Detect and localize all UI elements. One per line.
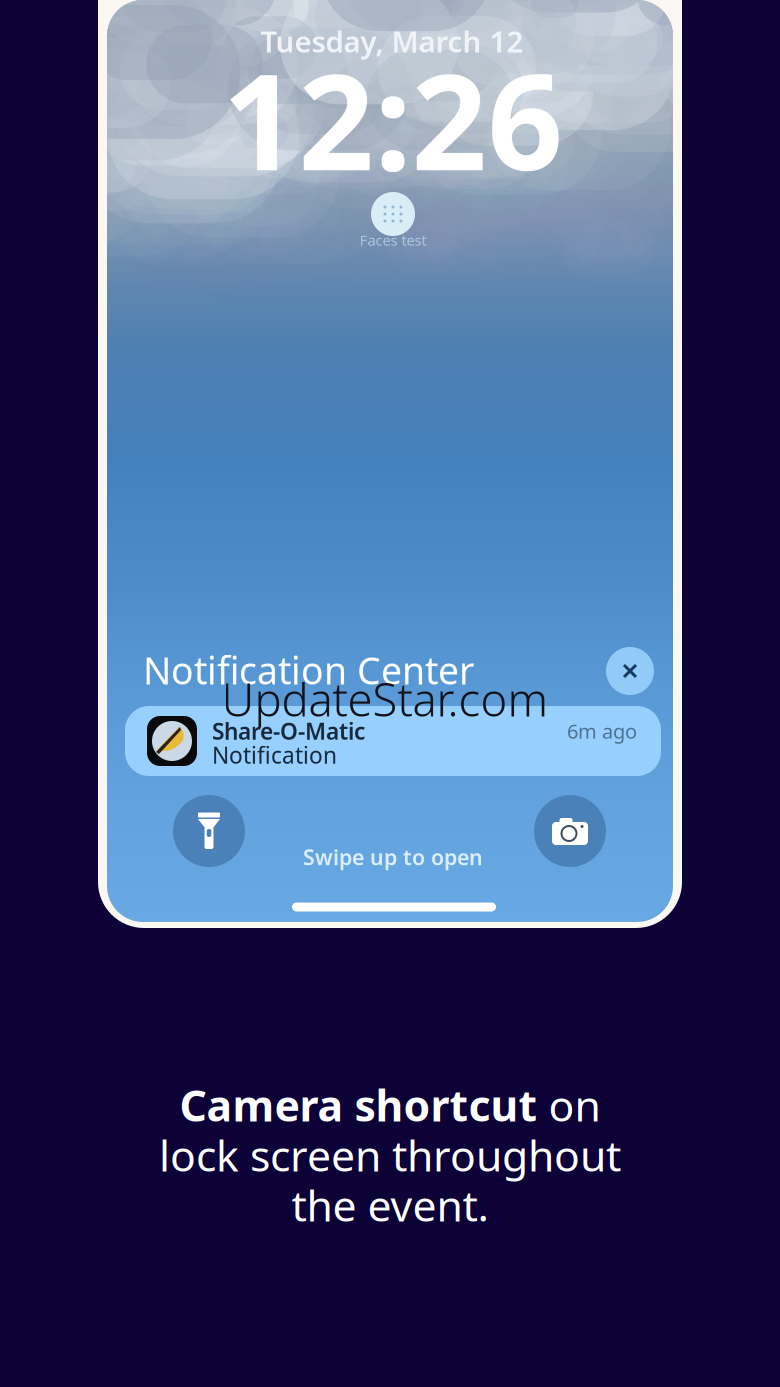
staticText: UpdateStar.com [221, 669, 548, 729]
staticText: lock screen throughout [159, 1127, 621, 1183]
staticText: 6m ago [567, 718, 637, 744]
button[interactable]: Camera [534, 795, 606, 867]
staticText: 12:26 [222, 31, 563, 207]
button[interactable]: Close Notification Center [606, 647, 654, 695]
button[interactable]: Flashlight [173, 795, 245, 867]
staticText: Tuesday, March 12 [260, 21, 523, 60]
staticText: Faces test [359, 230, 426, 250]
staticText: Swipe up to open [303, 843, 483, 871]
staticText: Share-O-Matic [212, 716, 365, 746]
staticText: on [537, 1077, 600, 1133]
staticText: Notification Center [143, 645, 474, 695]
staticText: the event. [291, 1177, 488, 1233]
staticText: Notification [212, 740, 337, 770]
button[interactable]: Share-O-Matic [125, 706, 661, 776]
staticText: Camera shortcut [179, 1077, 537, 1133]
